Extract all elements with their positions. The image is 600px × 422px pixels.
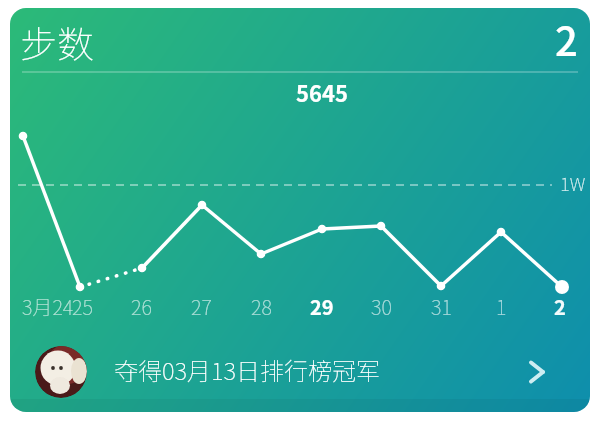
staticText: 25 [72,292,93,321]
staticText: 30 [371,292,392,321]
staticText: 3月24 [22,292,74,321]
staticText: 29 [310,292,334,321]
staticText: 31 [431,292,452,321]
staticText: 26 [131,292,152,321]
staticText: 1W [560,170,586,197]
button[interactable]: 夺得03月13日排行榜冠军 [10,338,590,412]
staticText: 28 [251,292,272,321]
button[interactable]: 2 [508,10,578,66]
staticText: 2 [554,292,566,321]
staticText: 5645 [296,76,348,108]
staticText: 2 [555,10,578,66]
staticText: 27 [191,292,212,321]
staticText: 夺得03月13日排行榜冠军 [114,352,381,387]
staticText: 1 [496,292,507,321]
staticText: 步数 [20,15,94,69]
